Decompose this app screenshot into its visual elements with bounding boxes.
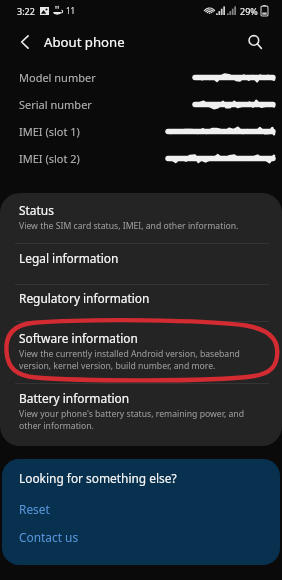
staticText: About phone bbox=[44, 33, 125, 51]
staticText: 3:22 bbox=[17, 5, 35, 17]
button[interactable]: Status bbox=[0, 193, 282, 243]
button[interactable]: Search bbox=[240, 27, 270, 57]
button[interactable]: IMEI (slot 2) bbox=[0, 145, 282, 172]
staticText: Serial number bbox=[19, 97, 92, 112]
button[interactable]: Contact us bbox=[19, 529, 79, 545]
staticText: Reset bbox=[19, 501, 50, 517]
staticText: Status bbox=[19, 202, 54, 218]
button[interactable]: IMEI (slot 1) bbox=[0, 118, 282, 145]
staticText: Legal information bbox=[19, 250, 119, 266]
staticText: IMEI (slot 1) bbox=[19, 124, 80, 139]
button[interactable]: Reset bbox=[19, 501, 50, 517]
staticText: Regulatory information bbox=[19, 290, 150, 306]
button[interactable]: Back bbox=[10, 27, 40, 57]
staticText: Contact us bbox=[19, 529, 79, 545]
button[interactable]: Regulatory information bbox=[0, 285, 282, 321]
button[interactable]: Serial number bbox=[0, 91, 282, 118]
staticText: IMEI (slot 2) bbox=[19, 151, 80, 166]
staticText: View the SIM card status, IMEI, and othe… bbox=[19, 220, 239, 232]
staticText: Looking for something else? bbox=[19, 470, 177, 486]
staticText: 11 bbox=[66, 5, 76, 16]
button[interactable]: Software information bbox=[0, 322, 282, 383]
button[interactable]: Legal information bbox=[0, 244, 282, 284]
staticText: Battery information bbox=[19, 390, 130, 406]
staticText: View the currently installed Android ver… bbox=[19, 348, 240, 371]
staticText: 29% bbox=[240, 5, 258, 17]
staticText: Software information bbox=[19, 330, 138, 346]
button[interactable]: Model number bbox=[0, 64, 282, 91]
staticText: View your phone's battery status, remain… bbox=[19, 408, 244, 431]
button[interactable]: Battery information bbox=[0, 384, 282, 446]
staticText: Model number bbox=[19, 70, 96, 85]
